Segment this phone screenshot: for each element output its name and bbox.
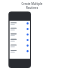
button[interactable]: Toggle routine <box>10 33 30 39</box>
button[interactable]: Toggle routine <box>10 51 30 57</box>
button[interactable]: Toggle routine <box>27 29 29 31</box>
button[interactable]: Toggle routine <box>10 39 30 45</box>
button[interactable]: Toggle routine <box>10 45 30 51</box>
button[interactable]: Toggle routine <box>27 35 29 37</box>
button[interactable]: Toggle routine <box>27 23 29 25</box>
button[interactable]: Toggle routine <box>10 27 30 33</box>
staticText: Create Multiple Routines <box>0 2 64 10</box>
button[interactable]: Toggle routine <box>10 21 30 27</box>
